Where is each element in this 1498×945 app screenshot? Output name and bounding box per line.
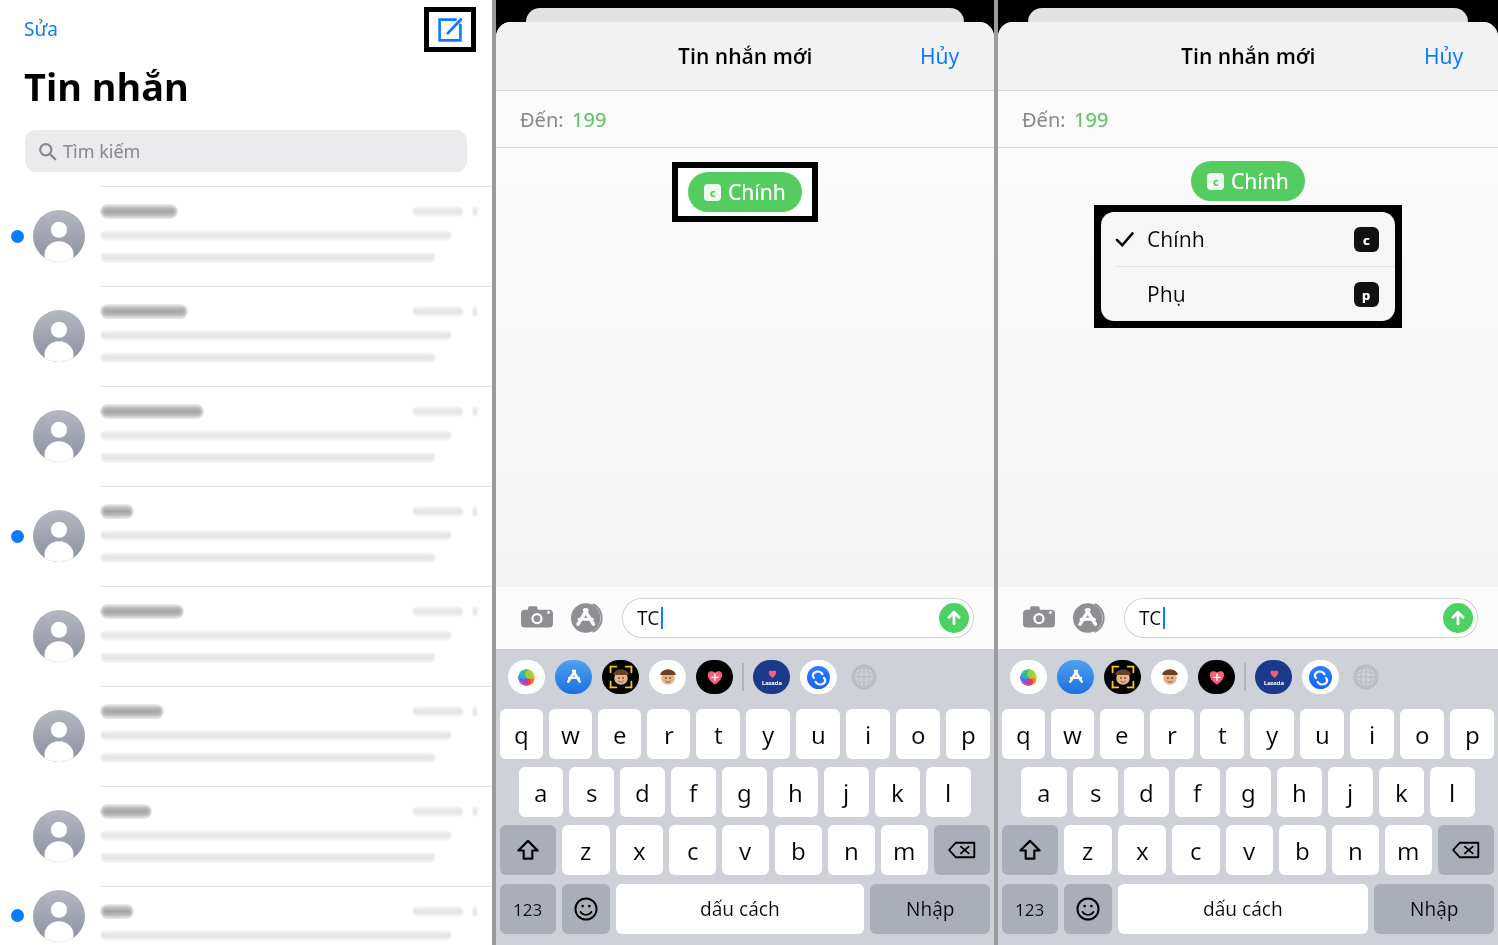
button[interactable]: Tìm kiếm xyxy=(25,130,467,172)
button[interactable]: Ngôn ngữ xyxy=(847,660,881,694)
button[interactable]: j xyxy=(1328,767,1373,817)
button[interactable]: Shazam xyxy=(800,660,837,694)
button[interactable]: w xyxy=(549,709,592,759)
button[interactable] xyxy=(0,686,492,786)
button[interactable]: f xyxy=(1175,767,1220,817)
button[interactable]: App Store xyxy=(1057,660,1094,694)
button[interactable]: r xyxy=(1150,709,1194,759)
button[interactable] xyxy=(562,884,610,934)
button[interactable]: s xyxy=(1073,767,1118,817)
button[interactable]: App Store xyxy=(555,660,592,694)
button[interactable]: Shazam xyxy=(1302,660,1339,694)
button[interactable]: u xyxy=(1300,709,1344,759)
button[interactable]: d xyxy=(1124,767,1169,817)
button[interactable]: App Store xyxy=(566,597,608,639)
button[interactable]: Hủy xyxy=(916,38,964,75)
button[interactable]: g xyxy=(1226,767,1271,817)
button[interactable]: b xyxy=(775,825,822,875)
button[interactable]: dấu cách xyxy=(616,884,864,934)
button[interactable]: 123 xyxy=(500,884,556,934)
button[interactable]: c xyxy=(1172,825,1220,875)
button[interactable]: Lazada xyxy=(753,660,790,694)
button[interactable]: Chụp ảnh xyxy=(1018,597,1060,639)
button[interactable]: d xyxy=(620,767,665,817)
button[interactable]: Memoji xyxy=(602,660,639,694)
button[interactable]: z xyxy=(562,825,610,875)
button[interactable]: TC xyxy=(1124,598,1478,638)
button[interactable]: p xyxy=(1450,709,1494,759)
button[interactable]: Ảnh xyxy=(508,660,545,694)
button[interactable]: y xyxy=(746,709,790,759)
button[interactable]: k xyxy=(1379,767,1424,817)
button[interactable]: TC xyxy=(622,598,974,638)
button[interactable]: l xyxy=(1430,767,1475,817)
button[interactable]: v xyxy=(722,825,769,875)
button[interactable]: e xyxy=(598,709,641,759)
button[interactable]: m xyxy=(881,825,928,875)
button[interactable] xyxy=(1438,825,1494,875)
button[interactable]: z xyxy=(1064,825,1112,875)
button[interactable]: Gửi xyxy=(1443,603,1473,633)
button[interactable]: c xyxy=(669,825,716,875)
button[interactable]: f xyxy=(671,767,716,817)
button[interactable] xyxy=(0,186,492,286)
button[interactable]: Nhãn dán xyxy=(1151,660,1188,694)
button[interactable]: h xyxy=(773,767,818,817)
button[interactable]: Sức khỏe xyxy=(1198,660,1235,694)
button[interactable] xyxy=(1002,825,1058,875)
button[interactable]: Lazada xyxy=(1255,660,1292,694)
button[interactable]: w xyxy=(1051,709,1094,759)
button[interactable] xyxy=(0,386,492,486)
button[interactable]: Nhập xyxy=(1374,884,1494,934)
button[interactable]: h xyxy=(1277,767,1322,817)
button[interactable]: Chính xyxy=(1101,212,1395,266)
button[interactable]: i xyxy=(846,709,890,759)
button[interactable]: n xyxy=(1332,825,1379,875)
button[interactable]: q xyxy=(1002,709,1045,759)
button[interactable] xyxy=(934,825,990,875)
button[interactable]: Soạn tin nhắn mới xyxy=(429,12,471,47)
button[interactable]: b xyxy=(1279,825,1326,875)
button[interactable]: Phụ xyxy=(1101,267,1395,321)
button[interactable]: t xyxy=(1200,709,1244,759)
button[interactable] xyxy=(0,886,492,945)
button[interactable]: q xyxy=(500,709,543,759)
button[interactable]: g xyxy=(722,767,767,817)
button[interactable]: Memoji xyxy=(1104,660,1141,694)
button[interactable] xyxy=(1064,884,1112,934)
button[interactable]: c xyxy=(1191,161,1305,201)
button[interactable]: a xyxy=(1021,767,1067,817)
button[interactable]: l xyxy=(926,767,971,817)
button[interactable]: 123 xyxy=(1002,884,1058,934)
button[interactable] xyxy=(500,825,556,875)
button[interactable]: s xyxy=(569,767,614,817)
button[interactable] xyxy=(0,786,492,886)
button[interactable]: x xyxy=(1118,825,1166,875)
button[interactable] xyxy=(0,586,492,686)
button[interactable]: n xyxy=(828,825,875,875)
button[interactable]: c xyxy=(688,172,802,212)
button[interactable]: Nhãn dán xyxy=(649,660,686,694)
button[interactable]: Ngôn ngữ xyxy=(1349,660,1383,694)
button[interactable]: Sửa xyxy=(18,12,64,46)
button[interactable]: dấu cách xyxy=(1118,884,1368,934)
button[interactable]: v xyxy=(1226,825,1273,875)
button[interactable]: o xyxy=(1400,709,1444,759)
button[interactable] xyxy=(0,486,492,586)
button[interactable]: Nhập xyxy=(870,884,990,934)
button[interactable]: r xyxy=(647,709,690,759)
button[interactable]: o xyxy=(896,709,940,759)
button[interactable]: j xyxy=(824,767,869,817)
button[interactable]: a xyxy=(519,767,563,817)
button[interactable]: i xyxy=(1350,709,1394,759)
button[interactable]: m xyxy=(1385,825,1432,875)
button[interactable]: Chụp ảnh xyxy=(516,597,558,639)
button[interactable]: Hủy xyxy=(1420,38,1468,75)
button[interactable]: App Store xyxy=(1068,597,1110,639)
button[interactable]: y xyxy=(1250,709,1294,759)
button[interactable] xyxy=(0,286,492,386)
button[interactable]: p xyxy=(946,709,990,759)
button[interactable]: k xyxy=(875,767,920,817)
button[interactable]: Ảnh xyxy=(1010,660,1047,694)
button[interactable]: t xyxy=(696,709,740,759)
